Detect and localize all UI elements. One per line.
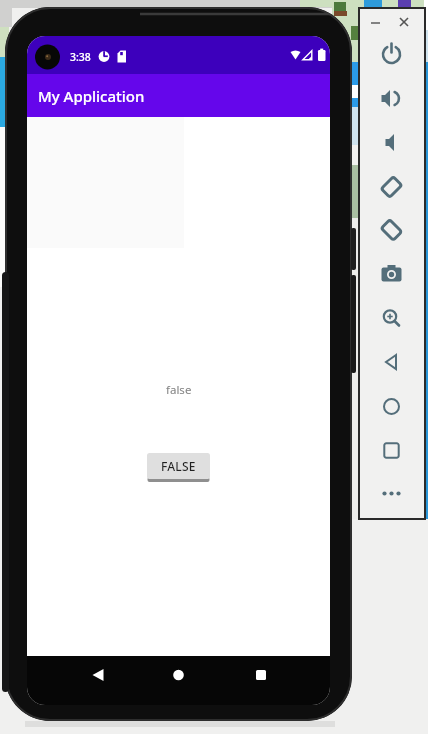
button[interactable] <box>370 214 414 247</box>
staticText: My Application <box>38 86 145 106</box>
button[interactable] <box>396 14 414 30</box>
staticText: FALSE <box>161 458 196 474</box>
button[interactable] <box>370 38 414 71</box>
button[interactable] <box>370 390 414 423</box>
button[interactable] <box>367 16 385 30</box>
staticText: 3:38 <box>70 50 91 64</box>
staticText: false <box>166 382 192 398</box>
button[interactable] <box>370 258 414 291</box>
button[interactable]: FALSE <box>147 453 210 482</box>
button[interactable] <box>370 477 414 510</box>
button[interactable] <box>370 82 414 115</box>
button[interactable] <box>370 346 414 379</box>
button[interactable] <box>370 434 414 467</box>
button[interactable] <box>370 302 414 335</box>
button[interactable] <box>370 171 414 204</box>
button[interactable] <box>154 656 204 705</box>
button[interactable] <box>236 656 286 705</box>
button[interactable] <box>78 656 128 705</box>
button[interactable] <box>370 126 414 159</box>
button[interactable]: My Application <box>27 74 330 117</box>
